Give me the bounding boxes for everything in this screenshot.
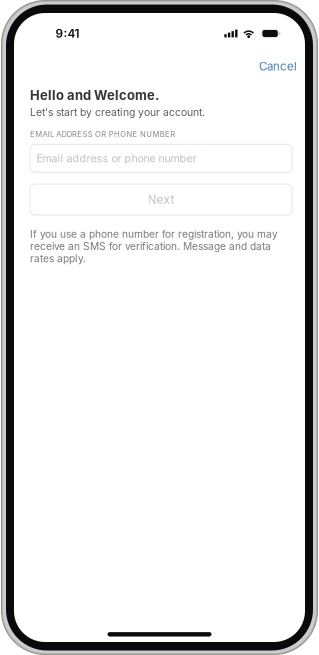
- button[interactable]: Next: [14, 184, 305, 215]
- staticText: Email address or phone number: [37, 152, 197, 165]
- staticText: Let's start by creating your account.: [30, 106, 205, 119]
- button[interactable]: Cancel: [254, 56, 302, 76]
- staticText: Cancel: [259, 59, 297, 73]
- staticText: If you use a phone number for registrati…: [30, 228, 278, 265]
- staticText: Next: [147, 192, 174, 207]
- staticText: 9:41: [55, 26, 79, 41]
- staticText: EMAIL ADDRESS OR PHONE NUMBER: [30, 130, 175, 139]
- staticText: Hello and Welcome.: [30, 87, 159, 103]
